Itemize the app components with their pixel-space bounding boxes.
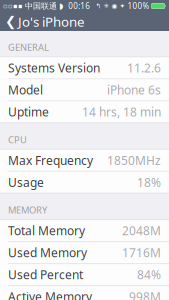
staticText: Model: [8, 82, 43, 98]
staticText: ✦: [119, 2, 125, 10]
staticText: Active Memory: [8, 289, 92, 300]
staticText: Usage: [8, 174, 44, 190]
button[interactable]: Uptime: [0, 101, 169, 122]
staticText: iPhone 6s: [107, 82, 161, 98]
button[interactable]: ❮: [0, 10, 90, 33]
button[interactable]: Model: [0, 79, 169, 101]
staticText: Jo's iPhone: [18, 13, 85, 30]
staticText: 1716M: [122, 245, 161, 261]
staticText: 中国联通: [25, 1, 57, 11]
staticText: Max Frequency: [8, 152, 93, 168]
button[interactable]: Total Memory: [0, 220, 169, 242]
staticText: 14 hrs, 18 min: [82, 104, 161, 120]
staticText: ▫▫▪▪: [3, 2, 23, 10]
staticText: MEMORY: [8, 204, 47, 216]
staticText: 84%: [137, 267, 161, 283]
staticText: ❮: [5, 14, 16, 29]
staticText: Systems Version: [8, 60, 100, 76]
button[interactable]: Systems Version: [0, 57, 169, 79]
staticText: ◉: [111, 2, 117, 10]
staticText: Uptime: [8, 104, 49, 120]
staticText: CPU: [8, 133, 27, 146]
staticText: 1850MHz: [107, 152, 161, 168]
button[interactable]: Active Memory: [0, 286, 169, 300]
staticText: 2048M: [122, 223, 161, 239]
staticText: GENERAL: [8, 41, 49, 53]
button[interactable]: Max Frequency: [0, 150, 169, 172]
staticText: ✳: [103, 2, 109, 10]
staticText: Used Memory: [8, 245, 87, 261]
staticText: Total Memory: [8, 223, 85, 239]
staticText: ◗: [59, 1, 63, 11]
staticText: 18%: [137, 174, 161, 190]
button[interactable]: Usage: [0, 172, 169, 193]
button[interactable]: Used Memory: [0, 242, 169, 264]
staticText: 100%: [127, 1, 149, 11]
staticText: 11.2.6: [127, 60, 161, 76]
staticText: 00:16: [68, 1, 90, 11]
button[interactable]: Used Percent: [0, 264, 169, 286]
staticText: Used Percent: [8, 267, 83, 283]
staticText: ↰: [95, 2, 101, 10]
staticText: 998M: [129, 289, 161, 300]
